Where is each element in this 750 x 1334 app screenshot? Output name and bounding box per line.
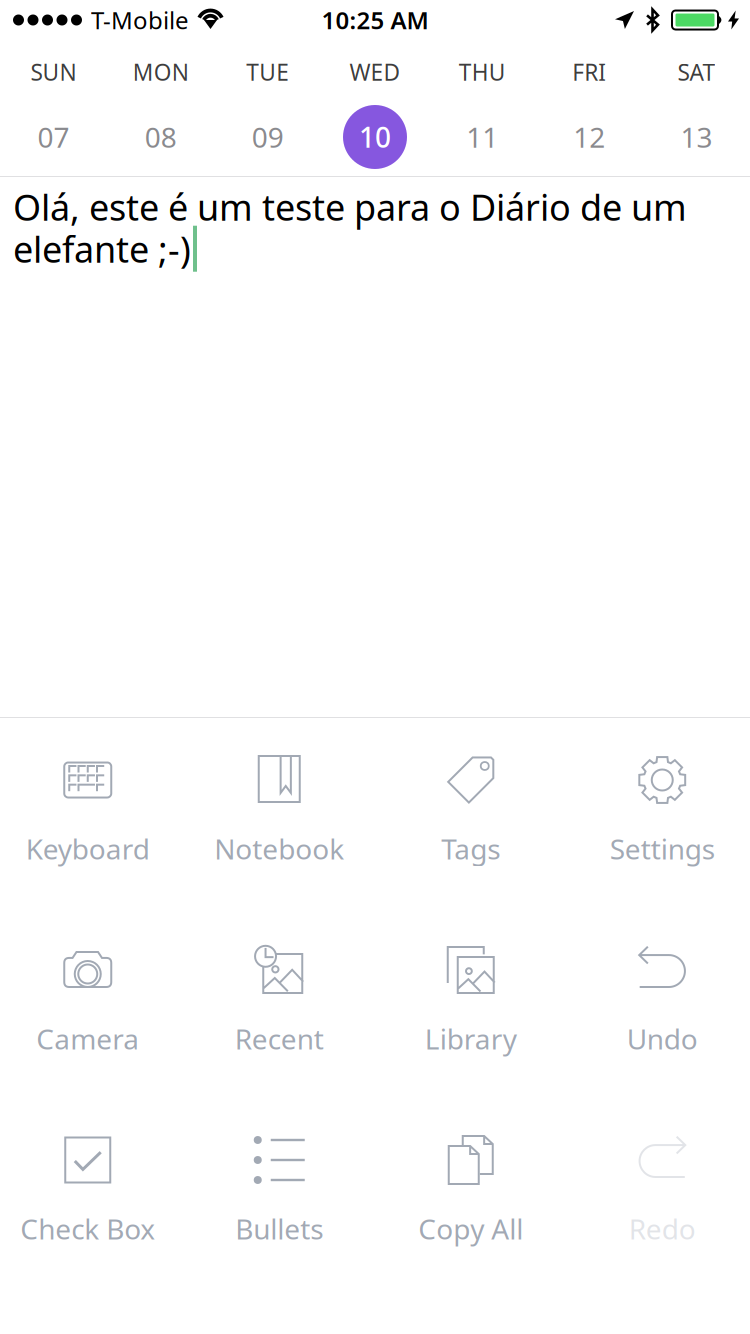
- staticText: MON: [133, 57, 189, 87]
- staticText: SAT: [677, 57, 715, 87]
- staticText: Recent: [235, 1020, 324, 1057]
- button[interactable]: Library: [375, 908, 562, 1098]
- staticText: Copy All: [418, 1210, 523, 1247]
- staticText: Check Box: [20, 1210, 155, 1247]
- button[interactable]: FRI: [536, 40, 643, 176]
- staticText: Notebook: [214, 830, 344, 867]
- staticText: TUE: [246, 57, 289, 87]
- button[interactable]: SUN: [0, 40, 107, 176]
- staticText: THU: [459, 57, 506, 87]
- button[interactable]: Settings: [562, 718, 750, 908]
- button[interactable]: Copy All: [375, 1098, 562, 1288]
- staticText: FRI: [572, 57, 606, 87]
- staticText: Bullets: [235, 1210, 323, 1247]
- staticText: Undo: [627, 1020, 698, 1057]
- staticText: T-Mobile: [91, 4, 189, 36]
- button[interactable]: SAT: [643, 40, 750, 176]
- staticText: Library: [425, 1020, 517, 1057]
- button[interactable]: THU: [429, 40, 536, 176]
- staticText: SUN: [31, 57, 77, 87]
- staticText: elefante ;-): [13, 225, 191, 273]
- staticText: 09: [252, 118, 284, 156]
- staticText: Tags: [441, 830, 500, 867]
- button[interactable]: Camera: [0, 908, 187, 1098]
- button[interactable]: Redo: [562, 1098, 750, 1288]
- staticText: Redo: [629, 1210, 696, 1247]
- staticText: 10: [359, 118, 391, 156]
- button[interactable]: Recent: [187, 908, 375, 1098]
- staticText: Settings: [610, 830, 715, 867]
- button[interactable]: Keyboard: [0, 718, 187, 908]
- staticText: 10:25 AM: [321, 4, 428, 36]
- staticText: 11: [466, 118, 498, 156]
- button[interactable]: Undo: [562, 908, 750, 1098]
- button[interactable]: MON: [107, 40, 214, 176]
- button[interactable]: Check Box: [0, 1098, 187, 1288]
- button[interactable]: Tags: [375, 718, 562, 908]
- staticText: Olá, este é um teste para o Diário de um: [13, 183, 687, 231]
- button[interactable]: Notebook: [187, 718, 375, 908]
- staticText: Keyboard: [26, 830, 150, 867]
- staticText: 07: [38, 118, 70, 156]
- staticText: 08: [145, 118, 177, 156]
- button[interactable]: WED: [321, 40, 428, 176]
- button[interactable]: Bullets: [187, 1098, 375, 1288]
- staticText: 13: [680, 118, 712, 156]
- button[interactable]: TUE: [214, 40, 321, 176]
- staticText: 12: [573, 118, 605, 156]
- staticText: WED: [349, 57, 400, 87]
- staticText: Camera: [36, 1020, 139, 1057]
